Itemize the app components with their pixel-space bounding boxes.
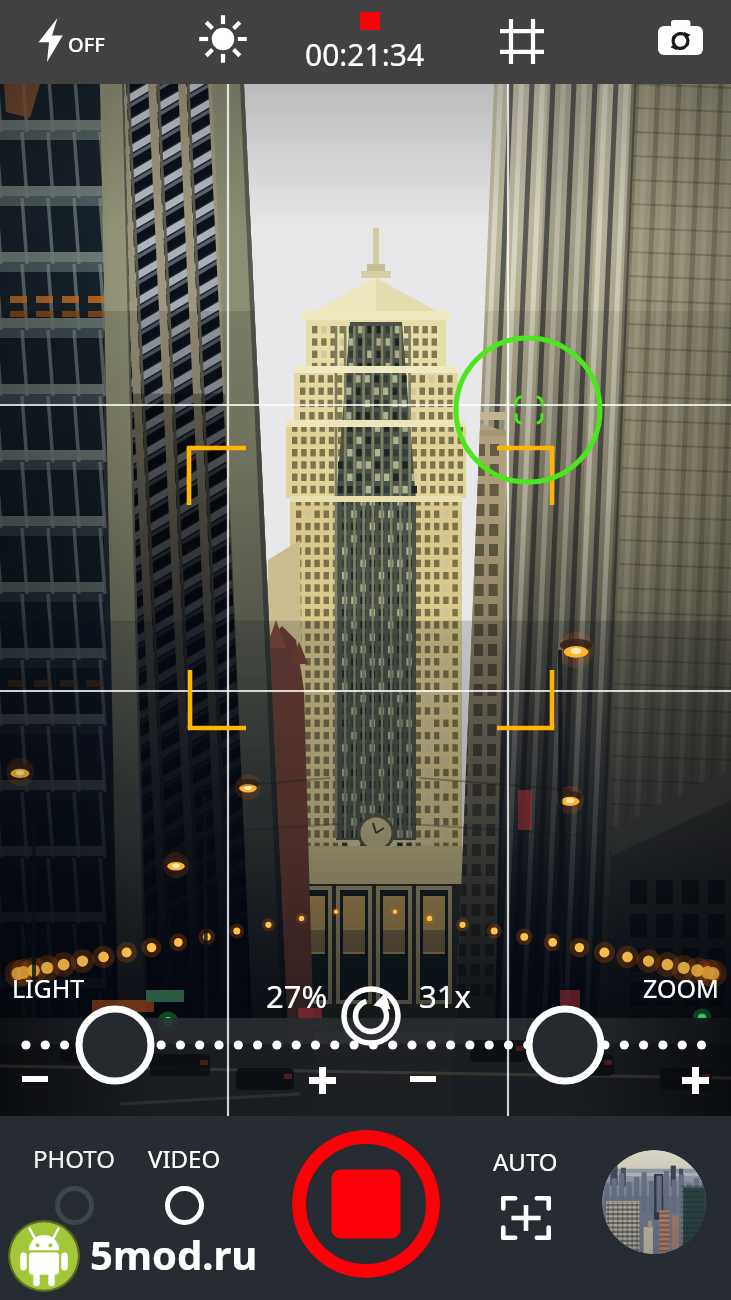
button[interactable]: VIDEO [142,1136,227,1231]
staticText: OFF [68,31,105,58]
button[interactable]: Gallery [602,1150,706,1254]
button[interactable]: Stop recording [292,1130,440,1278]
button[interactable]: Decrease light [12,1066,58,1092]
staticText: 31x [419,975,471,1017]
button[interactable]: Exposure [195,11,251,67]
button[interactable]: AUTO [487,1139,564,1247]
button[interactable]: Grid [494,13,550,70]
button[interactable]: Increase zoom [672,1057,719,1104]
button[interactable]: Increase light [299,1057,346,1104]
staticText: LIGHT [12,971,85,1005]
button[interactable]: Flash off [30,12,113,68]
button[interactable]: Switch camera [652,14,709,61]
button[interactable]: Light level [79,1009,151,1081]
staticText: 5mod.ru [90,1227,258,1281]
button[interactable]: Decrease zoom [400,1066,446,1092]
staticText: 27% [266,975,328,1017]
staticText: VIDEO [148,1142,221,1175]
staticText: PHOTO [33,1142,115,1175]
staticText: ZOOM [643,971,719,1005]
button[interactable]: PHOTO [27,1136,121,1231]
button[interactable]: Zoom level [529,1009,601,1081]
button[interactable]: Reset [344,987,400,1043]
staticText: AUTO [493,1145,558,1178]
staticText: 00:21:34 [305,34,425,75]
